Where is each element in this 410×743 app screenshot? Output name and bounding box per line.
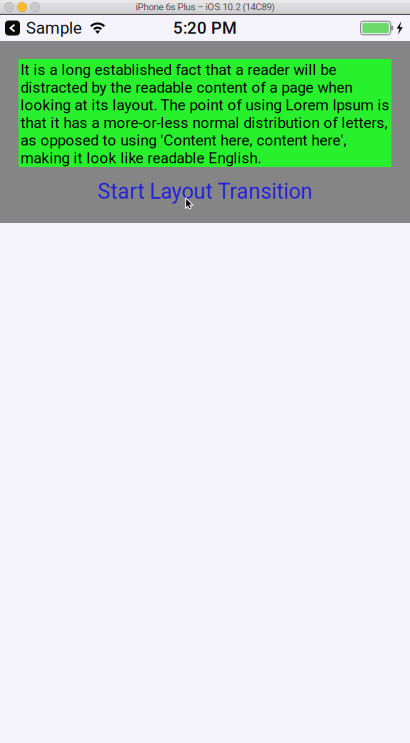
button[interactable]: Start Layout Transition xyxy=(19,167,391,216)
staticText: Sample xyxy=(26,18,82,38)
staticText: 5:20 PM xyxy=(173,18,237,38)
staticText: Start Layout Transition xyxy=(97,179,312,204)
button[interactable]: Back to Sample xyxy=(5,18,82,38)
button[interactable]: Close window xyxy=(4,2,13,11)
button[interactable]: Zoom window xyxy=(30,2,39,11)
staticText: iPhone 6s Plus – iOS 10.2 (14C89) xyxy=(135,1,274,13)
staticText: It is a long established fact that a rea… xyxy=(20,61,389,167)
button[interactable]: Minimise window xyxy=(17,2,26,11)
